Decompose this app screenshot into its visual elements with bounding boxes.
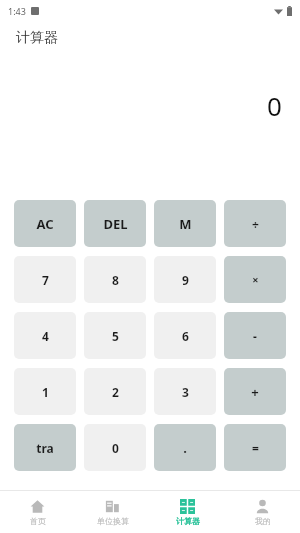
button[interactable]: + xyxy=(224,368,286,415)
staticText: 计算器 xyxy=(16,29,58,47)
button[interactable]: M xyxy=(154,200,216,247)
staticText: 0 xyxy=(267,88,282,123)
button[interactable]: = xyxy=(224,424,286,471)
staticText: 我的 xyxy=(255,516,271,526)
button[interactable]: tra xyxy=(14,424,76,471)
button[interactable]: 7 xyxy=(14,256,76,303)
staticText: × xyxy=(252,272,259,287)
button[interactable]: 8 xyxy=(84,256,146,303)
staticText: 首页 xyxy=(30,516,46,526)
button[interactable]: 首页 xyxy=(0,491,75,533)
staticText: - xyxy=(253,328,257,344)
staticText: 1 xyxy=(42,384,49,400)
staticText: = xyxy=(252,440,259,456)
staticText: 2 xyxy=(112,384,119,400)
button[interactable]: 1 xyxy=(14,368,76,415)
staticText: 单位换算 xyxy=(97,516,129,526)
staticText: . xyxy=(183,439,187,457)
staticText: ÷ xyxy=(252,216,259,232)
button[interactable]: 计算器 xyxy=(150,491,225,533)
button[interactable]: AC xyxy=(14,200,76,247)
staticText: 计算器 xyxy=(176,516,200,526)
staticText: 9 xyxy=(182,272,189,288)
button[interactable]: 单位换算 xyxy=(75,491,150,533)
staticText: AC xyxy=(36,215,54,233)
staticText: 4 xyxy=(42,328,49,344)
button[interactable]: 3 xyxy=(154,368,216,415)
staticText: 7 xyxy=(42,272,49,288)
staticText: 3 xyxy=(182,384,189,400)
button[interactable]: 我的 xyxy=(225,491,300,533)
button[interactable]: 5 xyxy=(84,312,146,359)
button[interactable]: × xyxy=(224,256,286,303)
staticText: 6 xyxy=(182,328,189,344)
button[interactable]: DEL xyxy=(84,200,146,247)
button[interactable]: 9 xyxy=(154,256,216,303)
staticText: 1:43 xyxy=(8,5,26,17)
staticText: M xyxy=(179,215,192,233)
button[interactable]: ÷ xyxy=(224,200,286,247)
button[interactable]: 2 xyxy=(84,368,146,415)
button[interactable]: 4 xyxy=(14,312,76,359)
staticText: tra xyxy=(36,440,54,456)
button[interactable]: - xyxy=(224,312,286,359)
button[interactable]: 6 xyxy=(154,312,216,359)
staticText: 8 xyxy=(112,272,119,288)
button[interactable]: 0 xyxy=(84,424,146,471)
staticText: 5 xyxy=(112,328,119,344)
staticText: + xyxy=(251,383,259,401)
staticText: DEL xyxy=(103,215,128,233)
staticText: 0 xyxy=(112,440,119,456)
button[interactable]: . xyxy=(154,424,216,471)
